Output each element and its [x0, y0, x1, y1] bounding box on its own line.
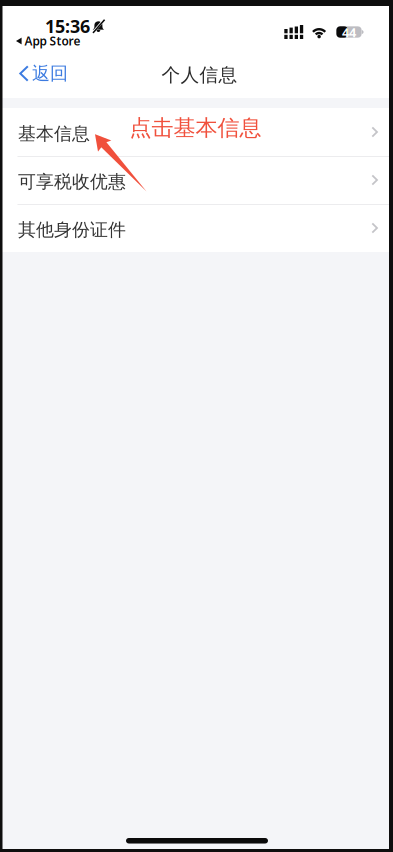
button[interactable]: 基本信息 — [0, 108, 393, 156]
staticText: 可享税收优惠 — [18, 170, 126, 193]
button[interactable]: App Store — [16, 34, 136, 48]
staticText: 基本信息 — [18, 122, 90, 145]
staticText: App Store — [25, 33, 81, 49]
staticText: 返回 — [32, 62, 68, 85]
button[interactable]: 其他身份证件 — [0, 204, 393, 252]
staticText: 其他身份证件 — [18, 218, 126, 241]
staticText: 点击基本信息 — [129, 114, 261, 142]
staticText: 44 — [342, 23, 356, 41]
button[interactable]: 可享税收优惠 — [0, 156, 393, 204]
button[interactable]: 返回 — [0, 51, 78, 95]
staticText: 个人信息 — [161, 63, 237, 87]
staticText: 15:36 — [45, 14, 90, 38]
